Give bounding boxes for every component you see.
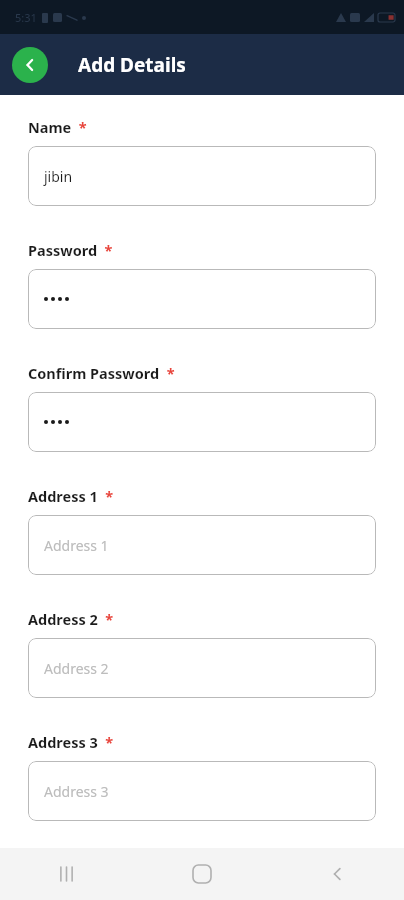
staticText: Password * [28, 240, 113, 260]
button[interactable]: jibin [28, 146, 376, 206]
staticText: Confirm Password * [28, 363, 175, 383]
button[interactable]: Back [269, 848, 404, 900]
button[interactable]: Home [134, 848, 269, 900]
button[interactable]: Back [12, 47, 48, 83]
staticText: Name * [28, 117, 87, 137]
staticText: Address 3 [44, 782, 109, 801]
button[interactable] [28, 392, 376, 452]
staticText: Address 1 [44, 536, 109, 555]
button[interactable]: Address 2 [28, 638, 376, 698]
staticText: Address 1 * [28, 486, 114, 506]
staticText: 5:31 [15, 10, 37, 25]
staticText: Address 3 * [28, 732, 114, 752]
staticText: jibin [44, 167, 73, 186]
staticText: Add Details [78, 52, 186, 78]
staticText: Address 2 * [28, 609, 114, 629]
staticText: Address 2 [44, 659, 109, 678]
button[interactable] [28, 269, 376, 329]
button[interactable]: Recent apps [0, 848, 134, 900]
button[interactable]: Address 1 [28, 515, 376, 575]
button[interactable]: Address 3 [28, 761, 376, 821]
